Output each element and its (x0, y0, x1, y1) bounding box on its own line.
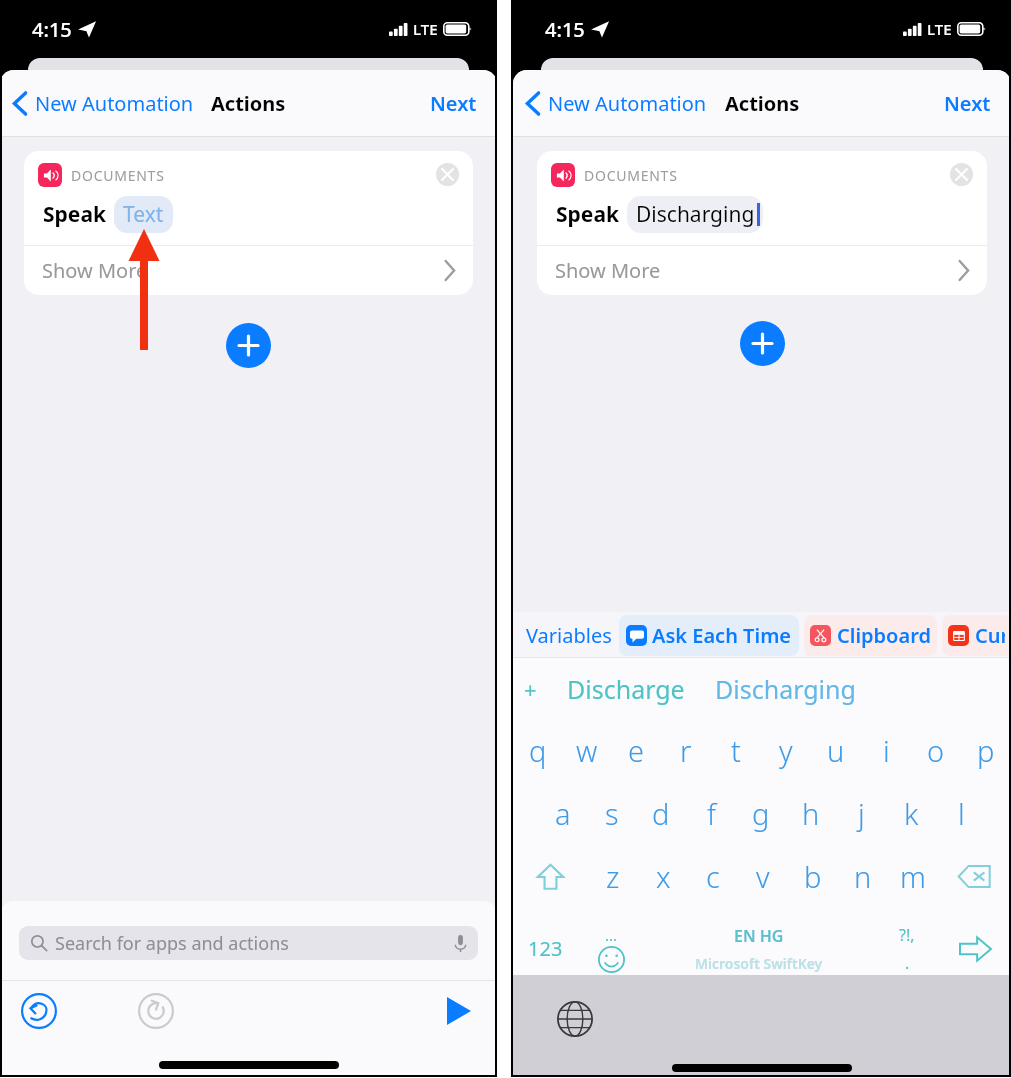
button[interactable]: Add action (740, 321, 785, 366)
button[interactable]: q (513, 720, 562, 781)
button[interactable]: EN HG (644, 915, 874, 982)
button[interactable]: New Automation (526, 90, 707, 117)
button[interactable]: Show More (537, 246, 987, 295)
button[interactable]: z (587, 845, 638, 908)
staticText: r (680, 731, 692, 770)
button[interactable]: Backspace (938, 845, 1011, 908)
staticText: Discharging (636, 200, 755, 229)
staticText: Microsoft SwiftKey (695, 954, 823, 973)
button[interactable]: Discharging (715, 672, 856, 706)
staticText: DOCUMENTS (584, 166, 678, 185)
staticText: e (628, 731, 645, 770)
button[interactable]: x (638, 845, 688, 908)
button[interactable]: Discharge (567, 672, 685, 706)
staticText: f (707, 794, 716, 833)
staticText: Text (123, 200, 164, 229)
button[interactable]: p (961, 720, 1011, 781)
button[interactable]: Text (123, 200, 164, 229)
staticText: a (555, 794, 571, 833)
staticText: Actions (725, 90, 800, 117)
staticText: ... (605, 925, 618, 945)
staticText: y (779, 731, 793, 770)
staticText: Current Date (975, 622, 1005, 649)
button[interactable]: s (587, 781, 636, 845)
staticText: k (904, 794, 919, 833)
button[interactable]: Discharging (636, 200, 760, 229)
staticText: q (529, 731, 547, 770)
button[interactable]: Redo (138, 993, 174, 1029)
staticText: 4:15 (32, 16, 72, 43)
button[interactable]: a (538, 781, 587, 845)
button[interactable]: Undo (21, 993, 57, 1029)
button[interactable]: Remove action (436, 163, 459, 186)
button[interactable]: m (888, 845, 938, 908)
staticText: 123 (528, 935, 563, 962)
staticText: LTE (413, 19, 438, 39)
staticText: w (576, 731, 598, 770)
staticText: c (706, 857, 720, 896)
button[interactable]: Current Date (948, 622, 1005, 649)
button[interactable]: l (936, 781, 986, 845)
staticText: g (752, 794, 770, 833)
staticText: s (605, 794, 619, 833)
button[interactable]: e (611, 720, 661, 781)
button[interactable]: Search for apps and actions (19, 926, 478, 960)
button[interactable]: Enter (940, 915, 1011, 982)
staticText: t (731, 731, 741, 770)
staticText: DOCUMENTS (71, 166, 165, 185)
staticText: u (827, 731, 845, 770)
button[interactable]: k (886, 781, 936, 845)
staticText: l (958, 794, 965, 833)
button[interactable]: Clipboard (810, 622, 931, 649)
staticText: Show More (42, 257, 148, 284)
button[interactable]: ?!, (874, 915, 940, 982)
staticText: Ask Each Time (652, 622, 792, 649)
button[interactable]: Ask Each Time (626, 622, 792, 649)
button[interactable]: Remove action (950, 163, 973, 186)
button[interactable]: Shift (513, 845, 587, 908)
staticText: x (656, 857, 671, 896)
button[interactable]: Run (443, 995, 475, 1027)
button[interactable]: Add action (226, 323, 271, 368)
button[interactable]: New Automation (13, 90, 194, 117)
staticText: Speak (43, 200, 106, 229)
staticText: . (905, 952, 910, 974)
button[interactable]: i (861, 720, 911, 781)
staticText: Discharging (715, 672, 856, 706)
staticText: Discharge (567, 672, 685, 706)
button[interactable]: r (661, 720, 711, 781)
button[interactable]: 123 (513, 915, 578, 982)
button[interactable]: t (711, 720, 761, 781)
button[interactable]: c (688, 845, 738, 908)
staticText: h (802, 794, 820, 833)
button[interactable]: b (788, 845, 838, 908)
button[interactable]: f (686, 781, 736, 845)
staticText: Search for apps and actions (55, 931, 289, 956)
button[interactable]: Variables (526, 622, 612, 649)
button[interactable]: j (836, 781, 886, 845)
button[interactable]: Show More (24, 246, 473, 295)
staticText: p (977, 731, 995, 770)
button[interactable]: g (736, 781, 786, 845)
button[interactable]: Next (430, 90, 477, 117)
button[interactable]: Emoji (578, 915, 644, 982)
button[interactable]: v (738, 845, 788, 908)
button[interactable]: h (786, 781, 836, 845)
staticText: o (927, 731, 945, 770)
staticText: Variables (526, 622, 612, 649)
staticText: Speak (556, 200, 619, 229)
button[interactable]: Change language (557, 1001, 593, 1037)
button[interactable]: u (811, 720, 861, 781)
button[interactable]: d (636, 781, 686, 845)
button[interactable]: Add word (524, 674, 537, 704)
staticText: b (804, 857, 822, 896)
button[interactable]: y (761, 720, 811, 781)
button[interactable]: o (911, 720, 961, 781)
staticText: Clipboard (837, 622, 931, 649)
staticText: d (652, 794, 670, 833)
button[interactable]: w (562, 720, 611, 781)
button[interactable]: Next (944, 90, 991, 117)
staticText: LTE (927, 19, 952, 39)
staticText: Show More (555, 257, 661, 284)
button[interactable]: n (838, 845, 888, 908)
